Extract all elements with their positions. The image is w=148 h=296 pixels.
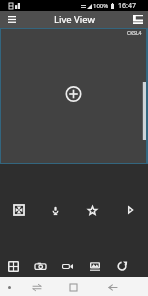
button[interactable]: Fit to screen: [0, 198, 37, 222]
button[interactable]: Video: [54, 254, 81, 278]
button[interactable]: Gallery: [81, 254, 108, 278]
button[interactable]: Microphone: [37, 198, 74, 222]
staticText: 16:47: [118, 1, 136, 11]
button[interactable]: Cast screen: [128, 11, 148, 28]
button[interactable]: Play: [111, 198, 148, 222]
button[interactable]: Camera: [27, 254, 54, 278]
button[interactable]: Recent apps: [29, 279, 45, 295]
button[interactable]: Dashboard: [0, 254, 27, 278]
button[interactable]: Refresh: [108, 254, 135, 278]
button[interactable]: Back: [105, 279, 121, 295]
staticText: Live View: [54, 13, 95, 26]
button[interactable]: Menu: [0, 11, 24, 28]
button[interactable]: Assistant: [1, 279, 17, 295]
button[interactable]: Favourite: [74, 198, 111, 222]
staticText: CKSL4: [127, 30, 142, 37]
button[interactable]: Home: [65, 279, 81, 295]
staticText: 100%: [93, 2, 109, 10]
